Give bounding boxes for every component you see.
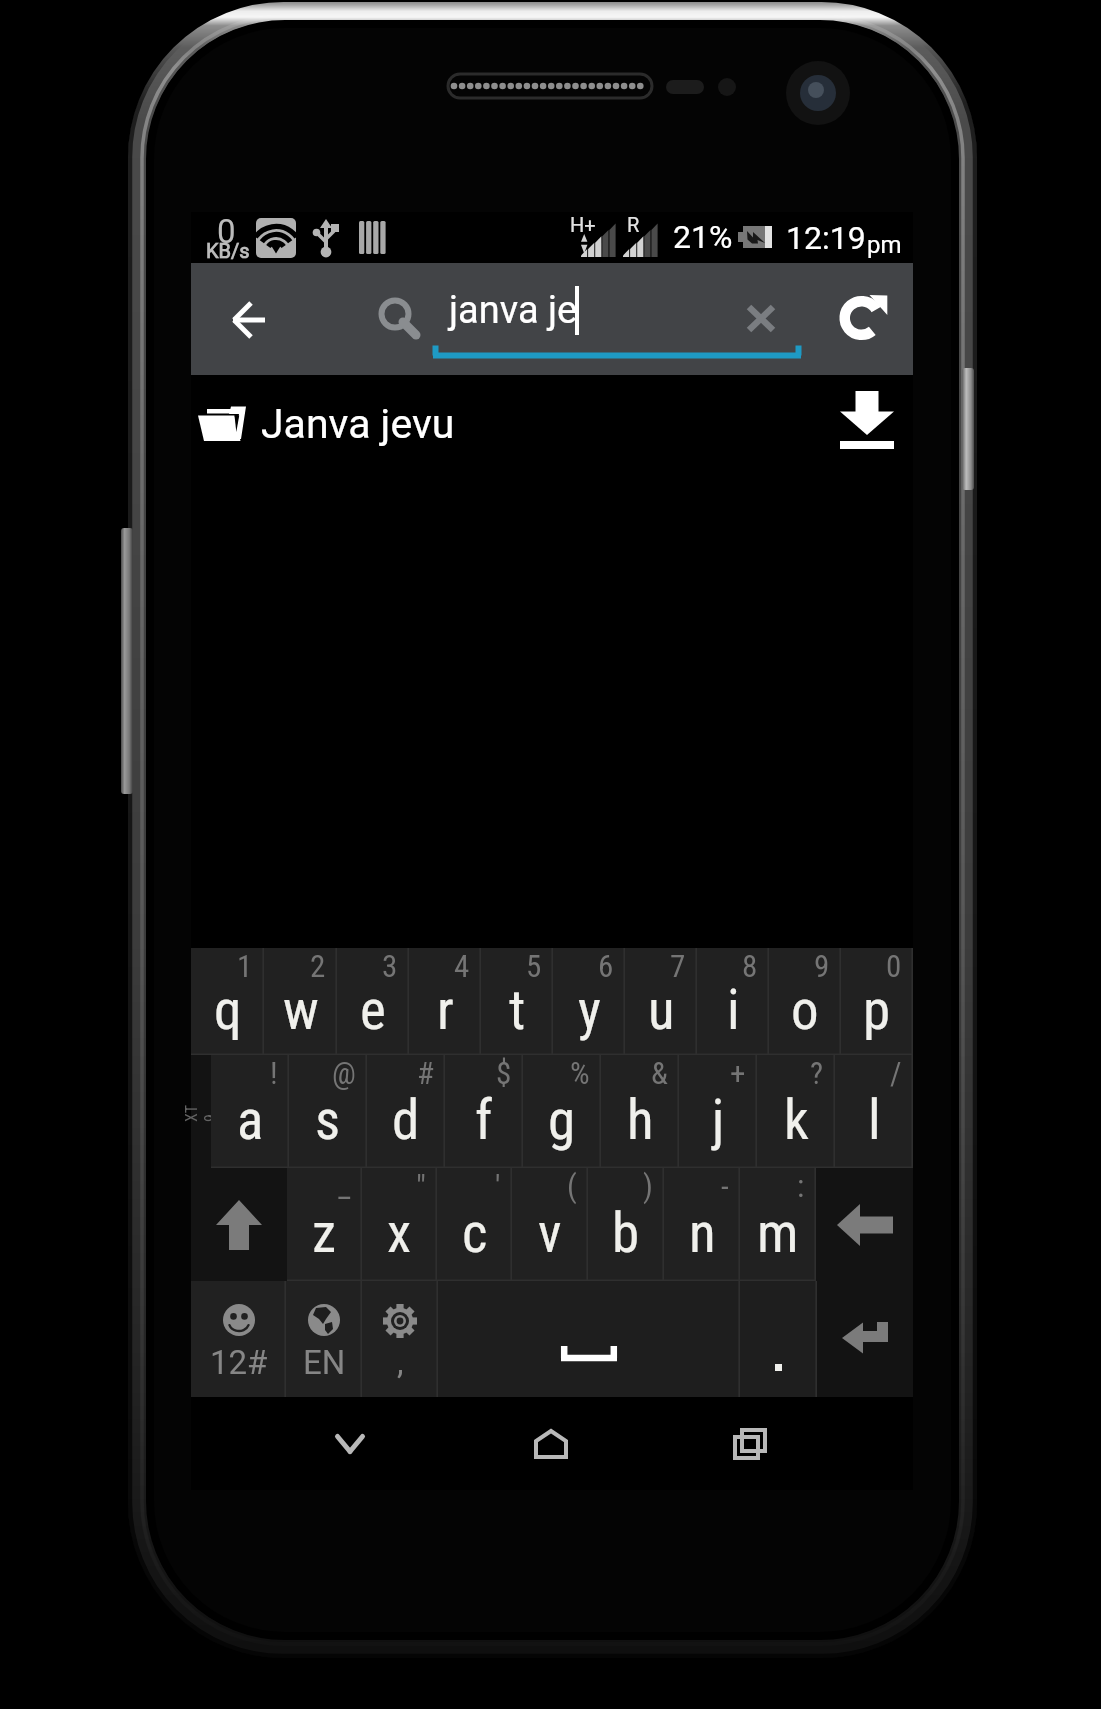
staticText: 12:19 <box>786 219 866 257</box>
staticText: 3 <box>382 948 398 984</box>
staticText: f <box>475 1088 493 1152</box>
staticText: r <box>437 978 454 1042</box>
staticText: _ <box>338 1168 351 1204</box>
staticText: 7 <box>670 948 686 984</box>
staticText: H+ <box>570 213 596 236</box>
button[interactable]: XT9 <box>191 1055 211 1168</box>
staticText: - <box>721 1168 729 1204</box>
staticText: t <box>509 978 526 1042</box>
button[interactable]: ( <box>512 1168 588 1281</box>
staticText: 0 <box>886 948 902 984</box>
button[interactable]: Back <box>202 273 296 367</box>
button[interactable]: 3 <box>337 948 409 1055</box>
staticText: 8 <box>742 948 758 984</box>
staticText: : <box>797 1168 805 1204</box>
button[interactable]: # <box>367 1055 445 1168</box>
button[interactable]: % <box>523 1055 601 1168</box>
button[interactable]: 9 <box>769 948 841 1055</box>
staticText: 1 <box>237 948 253 984</box>
button[interactable]: 6 <box>553 948 625 1055</box>
button[interactable]: Period <box>740 1281 817 1397</box>
button[interactable]: Shift <box>191 1168 287 1281</box>
button[interactable]: Change language <box>286 1281 362 1397</box>
button[interactable]: $ <box>445 1055 523 1168</box>
button[interactable]: Enter <box>817 1281 913 1397</box>
staticText: w <box>283 978 319 1042</box>
staticText: ( <box>567 1168 577 1204</box>
staticText: c <box>462 1201 488 1265</box>
staticText: 5 <box>526 948 542 984</box>
button[interactable]: 7 <box>625 948 697 1055</box>
staticText: " <box>416 1168 426 1204</box>
button[interactable]: : <box>740 1168 816 1281</box>
staticText: # <box>417 1055 434 1091</box>
button[interactable]: Symbols <box>191 1281 286 1397</box>
button[interactable]: _ <box>287 1168 362 1281</box>
button[interactable]: Clear text <box>716 272 806 364</box>
button[interactable]: 0 <box>841 948 913 1055</box>
staticText: $ <box>496 1055 512 1091</box>
staticText: 12# <box>210 1343 268 1382</box>
button[interactable]: & <box>601 1055 679 1168</box>
button[interactable]: 1 <box>191 948 264 1055</box>
staticText: 2 <box>310 948 326 984</box>
staticText: k <box>784 1088 809 1152</box>
staticText: 4 <box>454 948 470 984</box>
staticText: Janva jevu <box>261 400 455 448</box>
staticText: & <box>651 1055 668 1091</box>
button[interactable]: ) <box>588 1168 664 1281</box>
staticText: q <box>214 978 242 1042</box>
staticText: ) <box>643 1168 653 1204</box>
staticText: EN <box>303 1343 346 1382</box>
button[interactable]: Recents <box>702 1397 798 1490</box>
staticText: d <box>392 1088 420 1152</box>
staticText: h <box>627 1088 654 1152</box>
button[interactable]: ? <box>757 1055 835 1168</box>
staticText: s <box>315 1088 341 1152</box>
staticText: u <box>648 978 675 1042</box>
button[interactable]: 8 <box>697 948 769 1055</box>
staticText: / <box>890 1055 902 1091</box>
staticText: o <box>791 978 819 1042</box>
button[interactable]: 4 <box>409 948 481 1055</box>
staticText: + <box>730 1055 746 1091</box>
button[interactable]: Download <box>820 379 913 460</box>
button[interactable]: Hide keyboard <box>302 1397 398 1490</box>
button[interactable]: Settings <box>362 1281 438 1397</box>
button[interactable]: @ <box>289 1055 367 1168</box>
button[interactable]: - <box>664 1168 740 1281</box>
staticText: a <box>237 1088 264 1152</box>
button[interactable]: + <box>679 1055 757 1168</box>
staticText: v <box>538 1201 562 1265</box>
staticText: KB/s <box>206 239 250 262</box>
staticText: % <box>570 1055 590 1091</box>
staticText: ? <box>810 1055 824 1091</box>
button[interactable]: Janva jevu <box>191 375 913 460</box>
staticText: e <box>360 978 386 1042</box>
staticText: janva je <box>449 288 578 333</box>
staticText: 0 <box>217 212 236 251</box>
staticText: b <box>612 1201 640 1265</box>
button[interactable]: Backspace <box>816 1168 913 1281</box>
button[interactable]: Space <box>438 1281 740 1397</box>
button[interactable]: / <box>835 1055 913 1168</box>
staticText: @ <box>332 1055 356 1091</box>
staticText: R <box>627 213 640 236</box>
button[interactable]: Home <box>503 1397 599 1490</box>
button[interactable]: ! <box>211 1055 289 1168</box>
staticText: g <box>548 1088 576 1152</box>
button[interactable]: Refresh <box>828 277 904 361</box>
staticText: m <box>757 1201 799 1265</box>
button[interactable]: ' <box>437 1168 512 1281</box>
staticText: l <box>868 1088 881 1152</box>
button[interactable]: 5 <box>481 948 553 1055</box>
button[interactable]: " <box>362 1168 437 1281</box>
staticText: y <box>578 978 601 1042</box>
staticText: n <box>689 1201 716 1265</box>
staticText: pm <box>867 231 902 259</box>
staticText: x <box>387 1201 412 1265</box>
staticText: 21% <box>673 218 733 256</box>
staticText: ! <box>270 1055 278 1091</box>
staticText: ' <box>495 1168 501 1204</box>
button[interactable]: 2 <box>264 948 337 1055</box>
